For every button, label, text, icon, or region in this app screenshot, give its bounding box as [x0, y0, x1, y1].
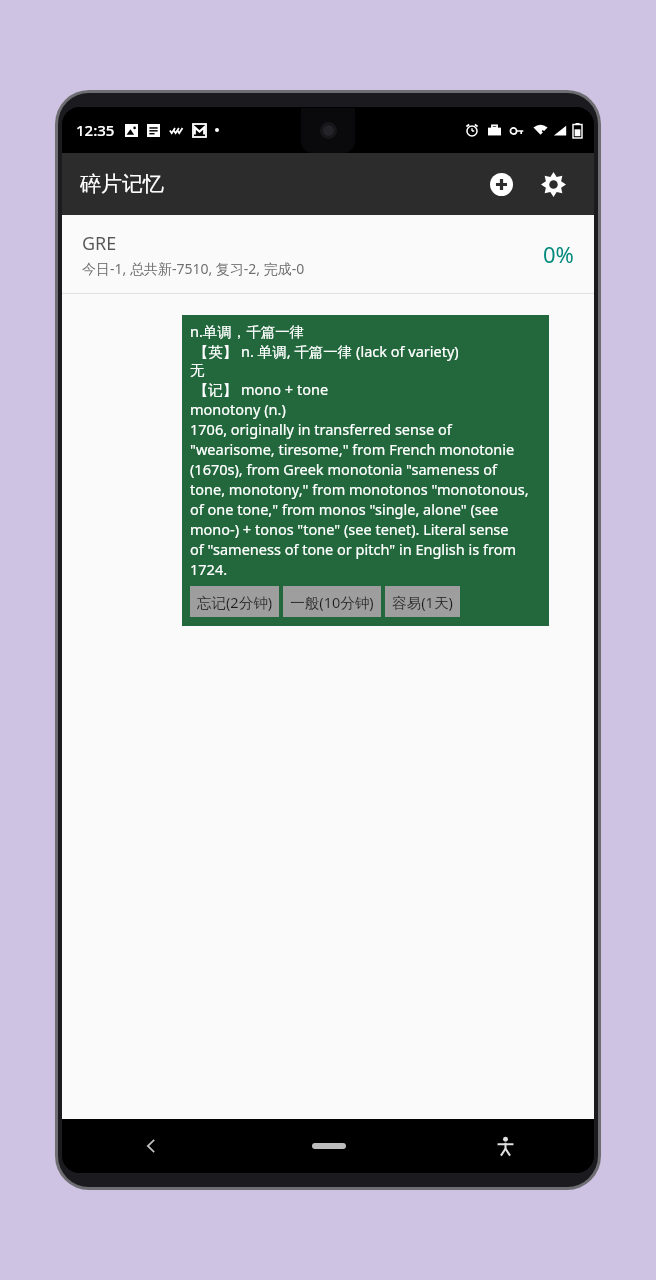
staticText: "wearisome, tiresome," from French monot…: [190, 439, 515, 459]
button[interactable]: Back: [62, 1119, 240, 1173]
staticText: 【记】 mono + tone: [190, 379, 329, 399]
staticText: 【英】 n. 单调, 千篇一律 (lack of variety): [190, 341, 459, 361]
button[interactable]: Add: [478, 161, 524, 207]
staticText: 无: [190, 361, 205, 379]
staticText: 碎片记忆: [80, 171, 164, 197]
staticText: monotony (n.): [190, 399, 286, 419]
button[interactable]: 一般(10分钟): [283, 586, 381, 617]
staticText: mono-) + tonos "tone" (see tenet). Liter…: [190, 519, 509, 539]
staticText: 0%: [543, 239, 574, 269]
staticText: of one tone," from monos "single, alone"…: [190, 499, 499, 519]
button[interactable]: Settings: [530, 161, 576, 207]
staticText: 1706, originally in transferred sense of: [190, 419, 452, 439]
staticText: (1670s), from Greek monotonia "sameness …: [190, 459, 497, 479]
staticText: 一般(10分钟): [290, 592, 374, 612]
button[interactable]: GRE: [62, 215, 594, 293]
staticText: of "sameness of tone or pitch" in Englis…: [190, 539, 517, 559]
button[interactable]: 容易(1天): [385, 586, 460, 617]
staticText: 容易(1天): [392, 592, 453, 612]
button[interactable]: 忘记(2分钟): [190, 586, 279, 617]
staticText: GRE: [82, 231, 117, 256]
staticText: n.单调，千篇一律: [190, 321, 305, 341]
staticText: 1724.: [190, 559, 228, 579]
button[interactable]: Accessibility: [417, 1119, 594, 1173]
staticText: 今日-1, 总共新-7510, 复习-2, 完成-0: [82, 259, 305, 278]
staticText: 忘记(2分钟): [197, 592, 272, 612]
button[interactable]: Home: [240, 1119, 417, 1173]
staticText: 12:35: [76, 120, 115, 140]
staticText: tone, monotony," from monotonos "monoton…: [190, 479, 529, 499]
